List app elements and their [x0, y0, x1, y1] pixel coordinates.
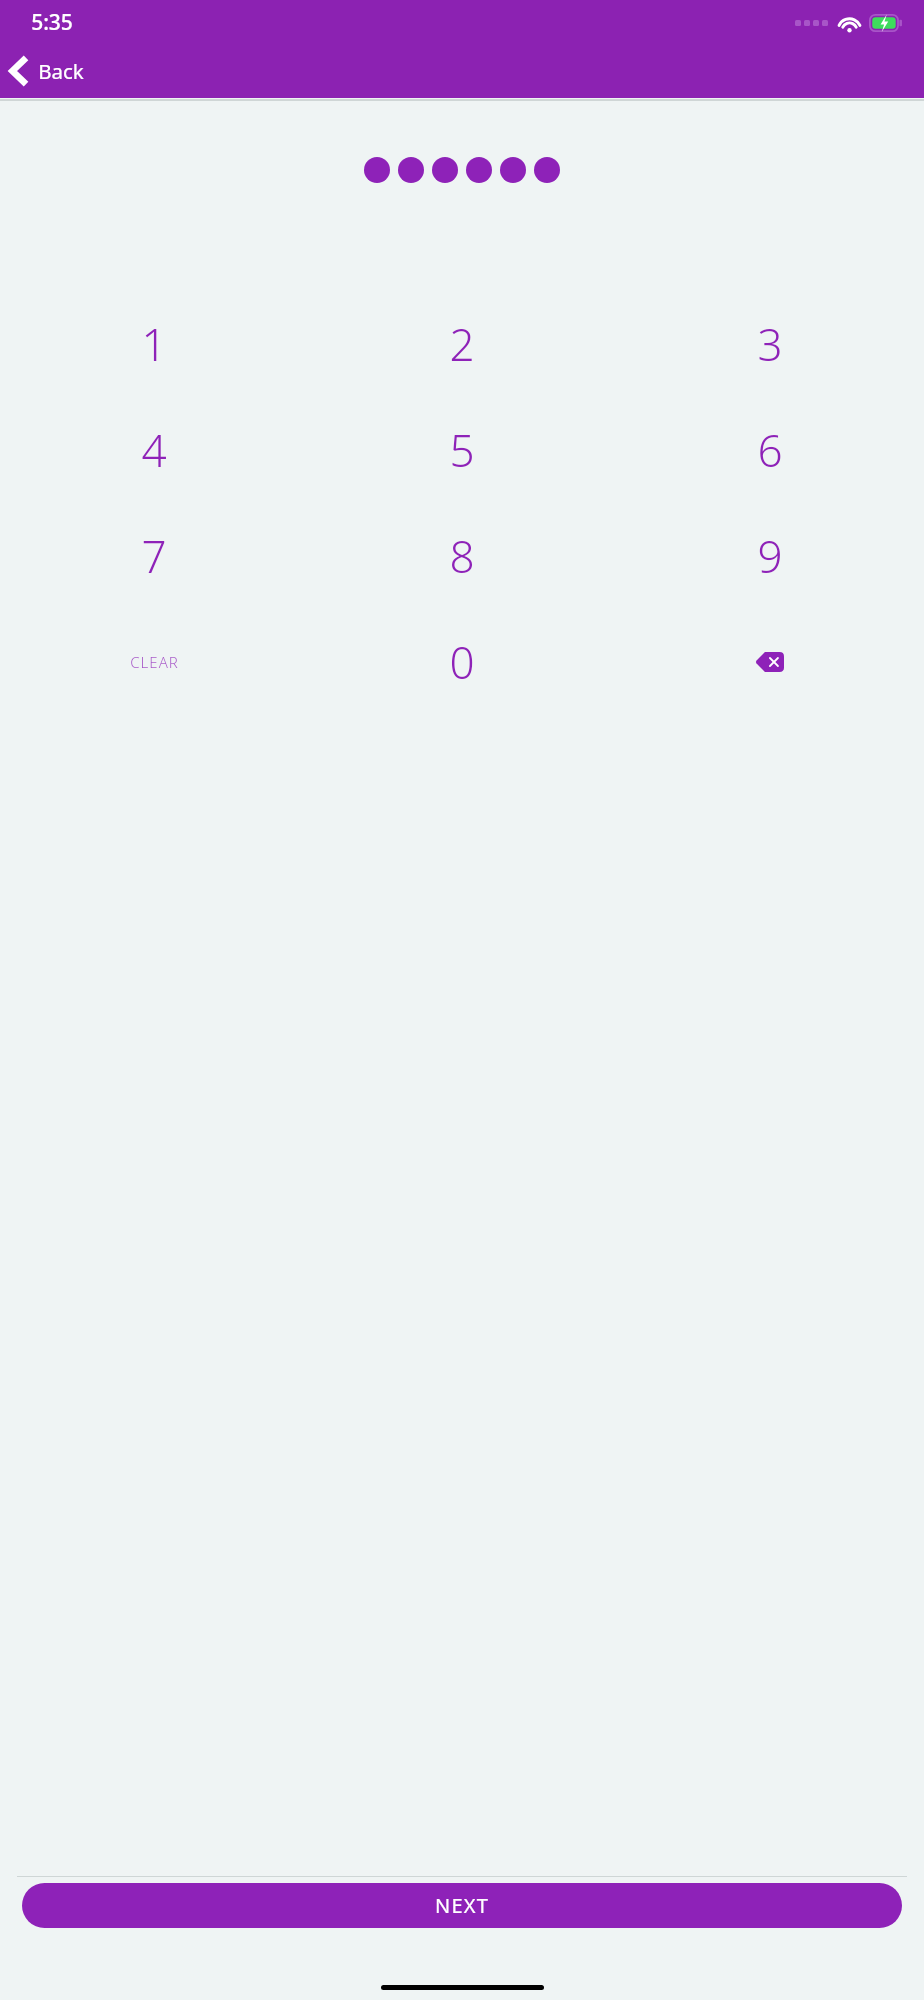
- staticText: CLEAR: [130, 652, 179, 672]
- staticText: 3: [757, 314, 783, 374]
- staticText: 5: [449, 420, 475, 480]
- staticText: 4: [141, 420, 167, 480]
- button[interactable]: 5: [308, 397, 616, 503]
- staticText: NEXT: [435, 1892, 489, 1919]
- button[interactable]: 7: [0, 503, 308, 609]
- button[interactable]: Backspace: [616, 609, 924, 715]
- button[interactable]: 4: [0, 397, 308, 503]
- staticText: 1: [141, 314, 167, 374]
- button[interactable]: 0: [308, 609, 616, 715]
- button[interactable]: 8: [308, 503, 616, 609]
- staticText: Back: [38, 57, 84, 85]
- staticText: 9: [757, 526, 783, 586]
- staticText: 2: [449, 314, 475, 374]
- button[interactable]: 3: [616, 291, 924, 397]
- button[interactable]: CLEAR: [0, 609, 308, 715]
- button[interactable]: 9: [616, 503, 924, 609]
- button[interactable]: 2: [308, 291, 616, 397]
- staticText: 5:35: [31, 8, 73, 37]
- staticText: 8: [449, 526, 475, 586]
- staticText: 7: [141, 526, 167, 586]
- staticText: 0: [449, 632, 475, 692]
- button[interactable]: 6: [616, 397, 924, 503]
- button[interactable]: NEXT: [22, 1883, 902, 1928]
- staticText: 6: [757, 420, 783, 480]
- button[interactable]: 1: [0, 291, 308, 397]
- button[interactable]: Back: [0, 44, 98, 98]
